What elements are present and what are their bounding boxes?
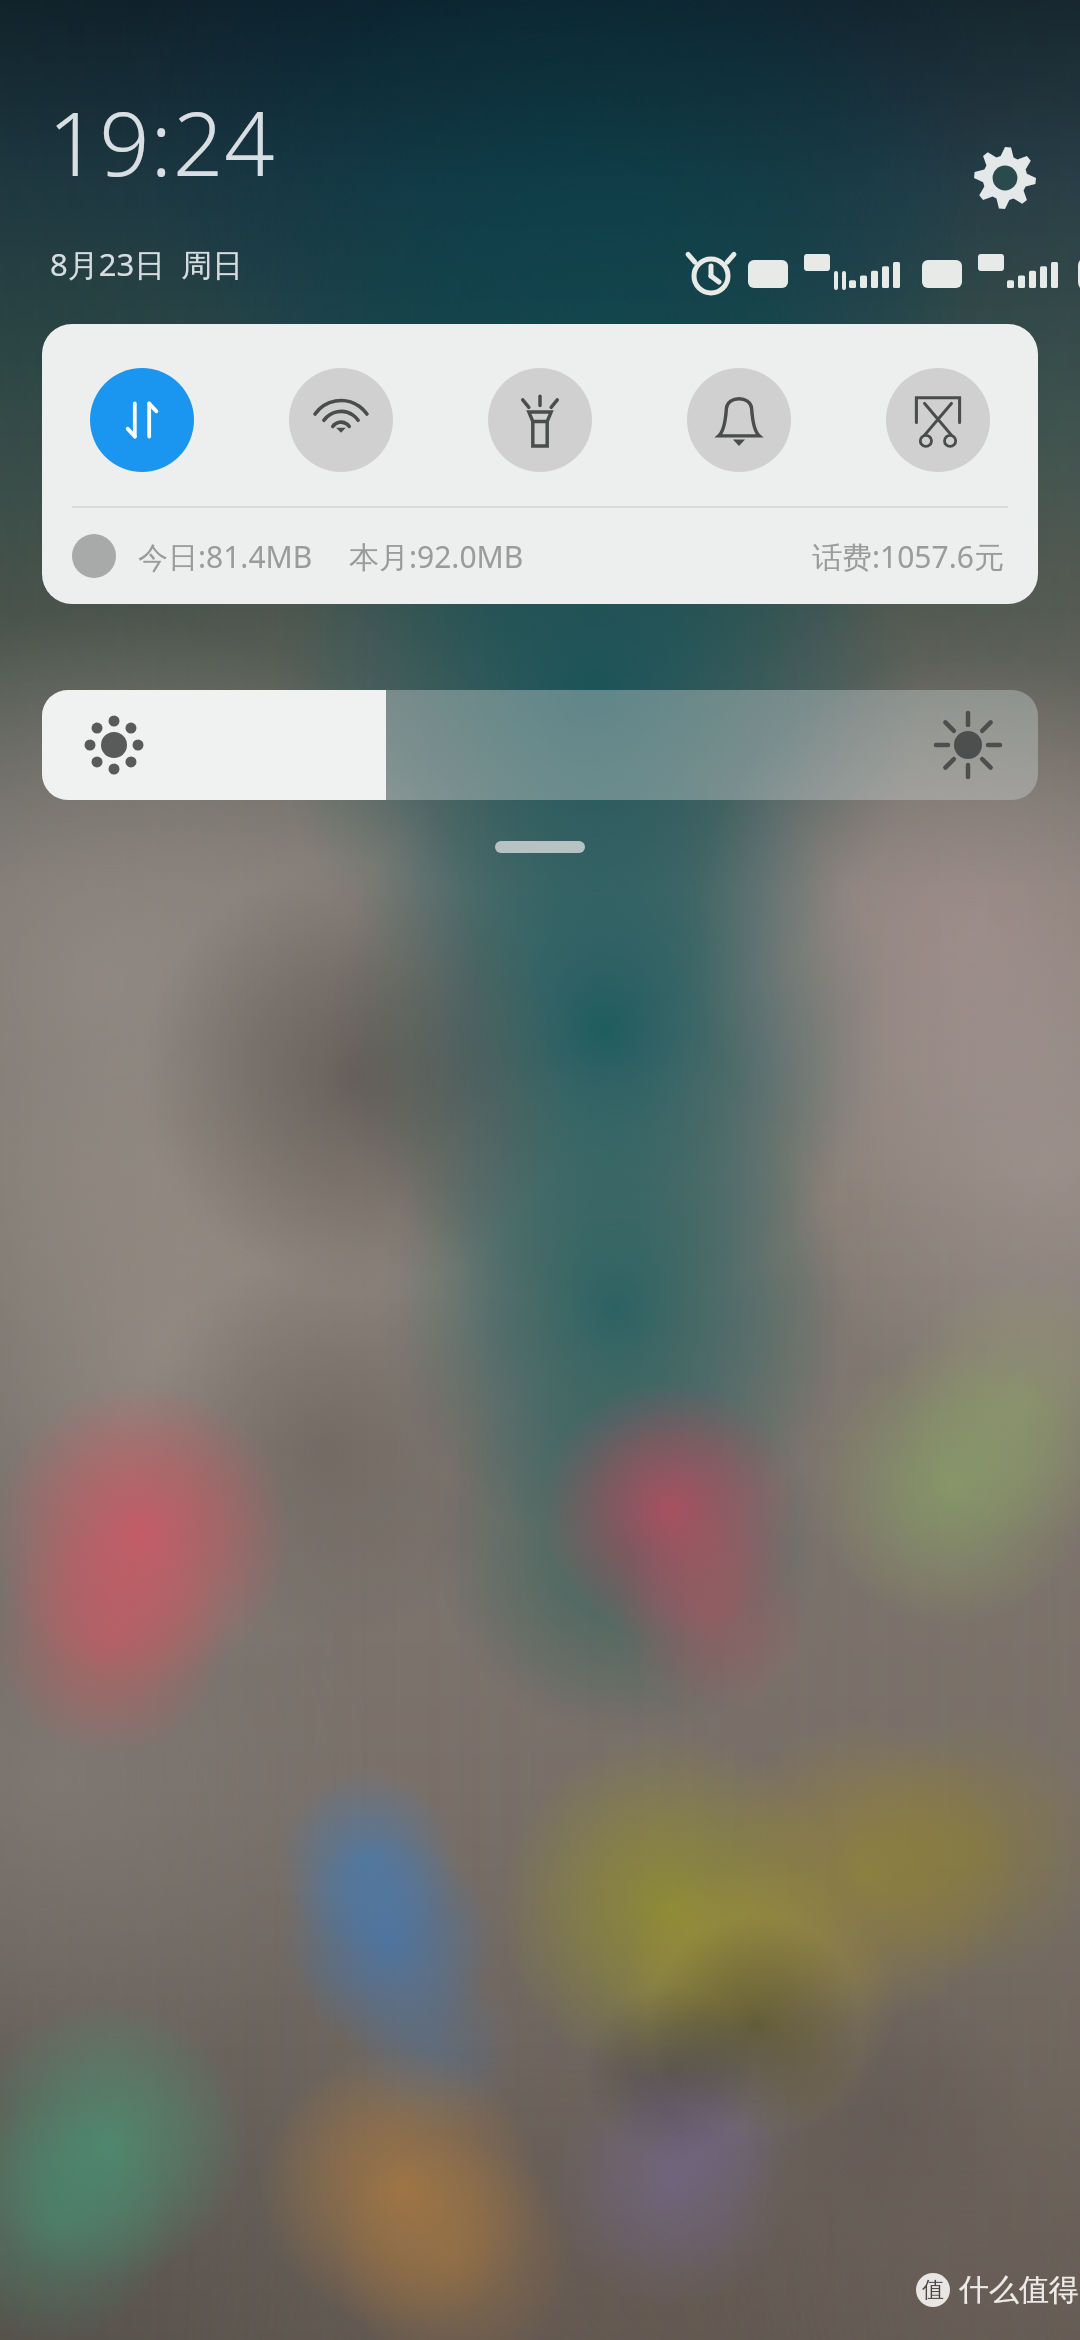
- button[interactable]: [0, 832, 1080, 862]
- staticText: 8月23日 周日: [50, 243, 244, 285]
- staticText: 什么值得买: [959, 2271, 1080, 2309]
- button[interactable]: Settings: [957, 130, 1053, 226]
- staticText: 值: [922, 2276, 944, 2304]
- staticText: 本月:92.0MB: [349, 536, 524, 577]
- staticText: 话费:1057.6元: [812, 536, 1004, 577]
- button[interactable]: Screenshot: [886, 368, 990, 472]
- staticText: 今日:81.4MB: [138, 536, 313, 577]
- button[interactable]: Wi-Fi: [289, 368, 393, 472]
- button[interactable]: Do not disturb: [687, 368, 791, 472]
- button[interactable]: [42, 690, 1038, 800]
- button[interactable]: 今日:81.4MB: [42, 508, 1038, 604]
- staticText: 19:24: [48, 82, 276, 202]
- button[interactable]: Mobile data: [90, 368, 194, 472]
- button[interactable]: Flashlight: [488, 368, 592, 472]
